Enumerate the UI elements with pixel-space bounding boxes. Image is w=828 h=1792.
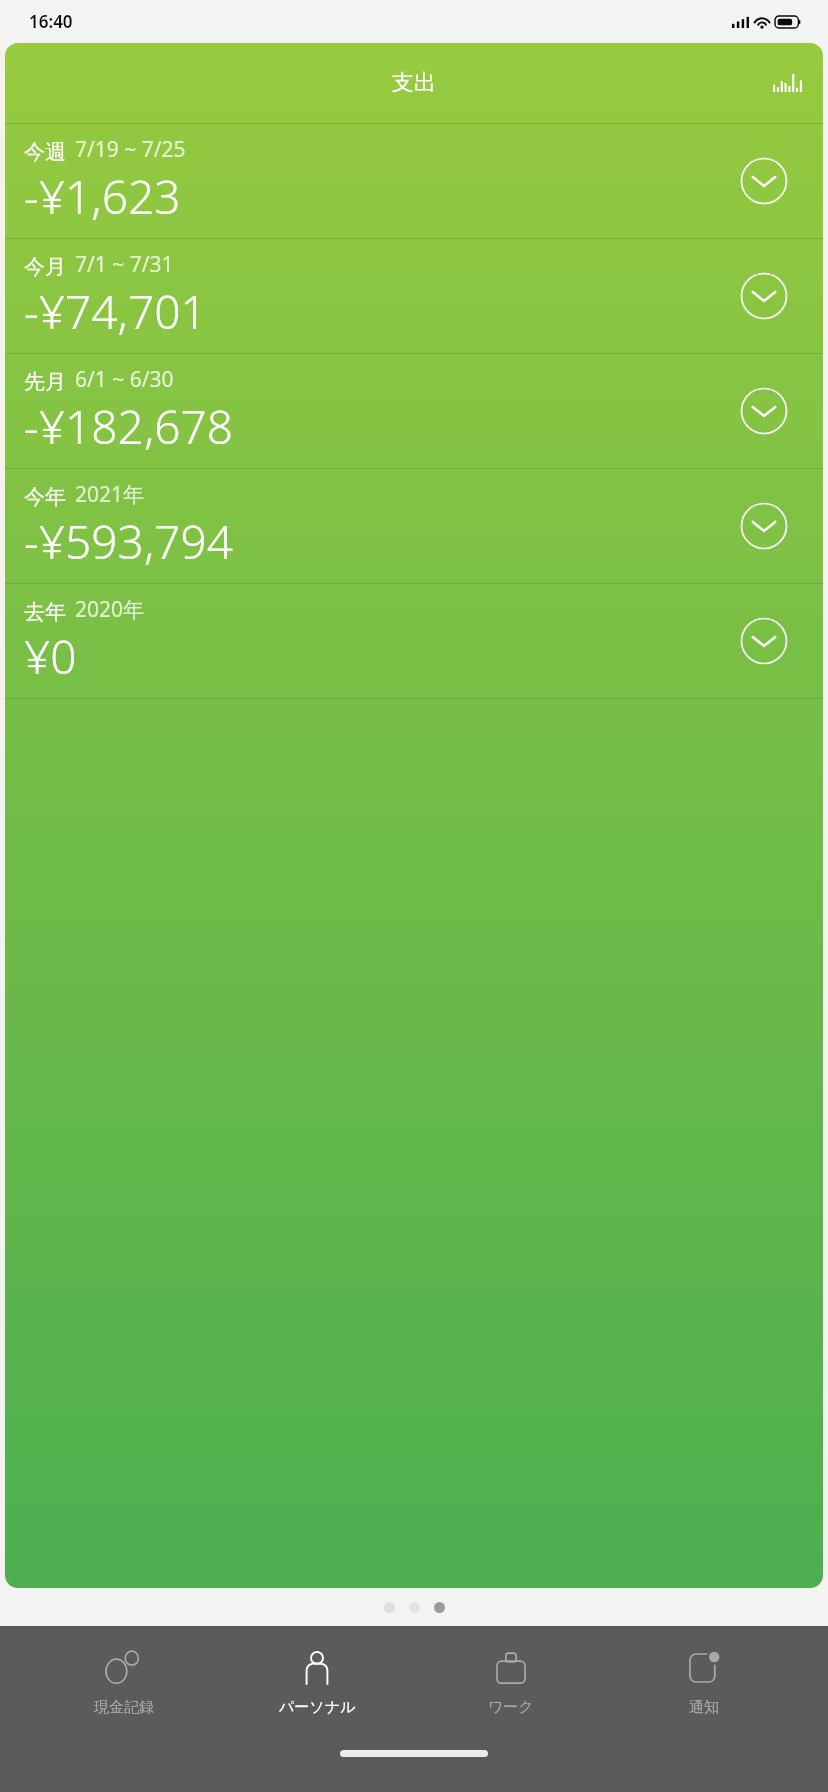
button[interactable]: 今月 — [5, 239, 823, 353]
staticText: -¥182,678 — [24, 395, 234, 458]
button[interactable]: 現金記録 — [54, 1626, 194, 1738]
staticText: 16:40 — [29, 10, 73, 33]
staticText: 去年 — [24, 599, 66, 625]
button[interactable]: Expand 今月 — [739, 271, 789, 321]
button[interactable]: Expand 先月 — [739, 386, 789, 436]
staticText: 現金記録 — [94, 1698, 154, 1717]
button[interactable]: Expand 去年 — [739, 616, 789, 666]
staticText: 今週 — [24, 139, 66, 165]
staticText: 今月 — [24, 254, 66, 280]
staticText: 支出 — [392, 69, 436, 97]
staticText: -¥1,623 — [24, 165, 181, 228]
button[interactable]: 今週 — [5, 124, 823, 238]
staticText: 先月 — [24, 369, 66, 395]
button[interactable]: パーソナル — [247, 1626, 387, 1738]
staticText: 通知 — [689, 1698, 719, 1717]
staticText: 2020年 — [75, 595, 145, 624]
button[interactable]: ワーク — [441, 1626, 581, 1738]
button[interactable]: 今年 — [5, 469, 823, 583]
staticText: 6/1 ~ 6/30 — [75, 365, 174, 394]
button[interactable]: Expand 今週 — [739, 156, 789, 206]
staticText: -¥74,701 — [24, 280, 207, 343]
staticText: ¥0 — [24, 625, 77, 688]
staticText: ワーク — [488, 1698, 534, 1717]
staticText: 2021年 — [75, 480, 145, 509]
staticText: パーソナル — [279, 1698, 356, 1717]
button[interactable]: 去年 — [5, 584, 823, 698]
staticText: 今年 — [24, 484, 66, 510]
staticText: -¥593,794 — [24, 510, 234, 573]
staticText: 7/1 ~ 7/31 — [75, 250, 174, 279]
staticText: 7/19 ~ 7/25 — [75, 135, 186, 164]
button[interactable]: Chart — [763, 59, 811, 107]
button[interactable]: Expand 今年 — [739, 501, 789, 551]
button[interactable]: 通知 — [634, 1626, 774, 1738]
button[interactable]: 先月 — [5, 354, 823, 468]
